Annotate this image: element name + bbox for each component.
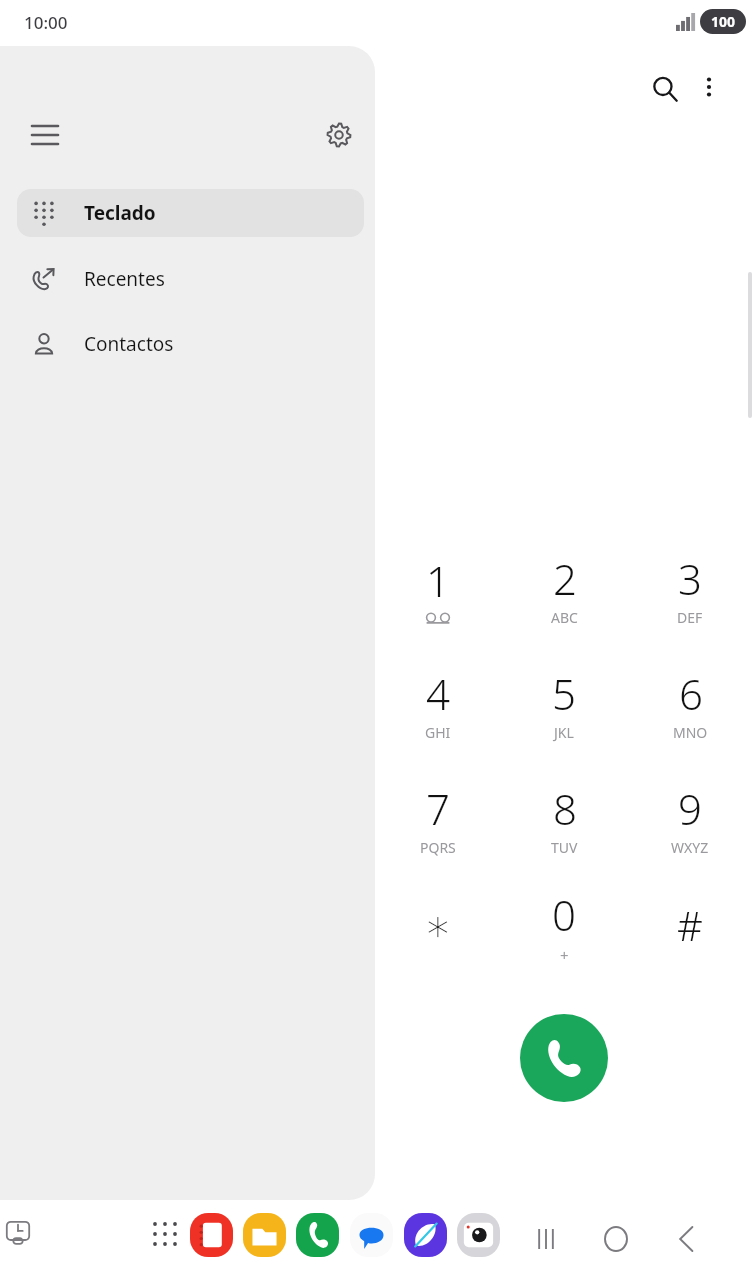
staticText: 2 — [553, 550, 577, 607]
button[interactable]: Messages — [350, 1213, 393, 1257]
staticText: ∗ — [424, 900, 452, 951]
staticText: 9 — [678, 780, 702, 837]
button[interactable]: Recentes — [17, 255, 364, 303]
staticText: DEF — [677, 608, 703, 627]
button[interactable]: Contactos — [17, 320, 364, 368]
staticText: TUV — [551, 838, 578, 857]
staticText: 7 — [426, 780, 450, 837]
button[interactable]: Search — [641, 65, 689, 113]
button[interactable]: My Files — [243, 1213, 286, 1257]
button[interactable]: Camera — [457, 1213, 500, 1257]
button[interactable]: Call — [520, 1014, 608, 1102]
button[interactable]: 3 — [634, 536, 746, 640]
staticText: ABC — [551, 608, 578, 627]
staticText: MNO — [673, 723, 708, 742]
staticText: 1 — [426, 552, 450, 609]
staticText: + — [560, 945, 569, 965]
button[interactable]: Internet — [404, 1213, 447, 1257]
staticText: PQRS — [420, 838, 456, 857]
button[interactable]: Clock — [2, 1217, 34, 1249]
staticText: Teclado — [84, 200, 156, 226]
button[interactable]: # — [634, 873, 746, 977]
button[interactable]: Phone — [296, 1213, 339, 1257]
button[interactable]: 5 — [508, 651, 620, 755]
button[interactable]: 6 — [634, 651, 746, 755]
button[interactable]: 0 — [508, 873, 620, 977]
staticText: # — [677, 898, 703, 952]
button[interactable]: Home — [594, 1217, 638, 1261]
button[interactable]: ∗ — [382, 873, 494, 977]
button[interactable]: Menu — [21, 111, 69, 159]
button[interactable]: Apps — [148, 1217, 182, 1251]
button[interactable]: 8 — [508, 766, 620, 870]
staticText: 3 — [678, 550, 702, 607]
button[interactable]: Teclado — [17, 189, 364, 237]
button[interactable]: More options — [687, 65, 731, 109]
button[interactable]: Notes — [190, 1213, 233, 1257]
staticText: 8 — [553, 780, 577, 837]
staticText: Contactos — [84, 331, 174, 357]
staticText: 5 — [552, 665, 576, 722]
staticText: 4 — [426, 665, 450, 722]
staticText: 10:00 — [24, 11, 68, 34]
staticText: 0 — [552, 886, 576, 943]
button[interactable]: 7 — [382, 766, 494, 870]
button[interactable]: Back — [665, 1217, 709, 1261]
button[interactable]: Recents — [524, 1217, 568, 1261]
staticText: 6 — [679, 665, 703, 722]
button[interactable]: 1 — [382, 536, 494, 640]
button[interactable]: Settings — [317, 113, 361, 157]
staticText: WXYZ — [671, 838, 709, 857]
staticText: 100 — [711, 12, 736, 31]
staticText: JKL — [554, 723, 574, 742]
staticText: Recentes — [84, 266, 165, 292]
button[interactable]: 9 — [634, 766, 746, 870]
staticText: GHI — [425, 723, 451, 742]
button[interactable]: 4 — [382, 651, 494, 755]
button[interactable]: 2 — [508, 536, 620, 640]
